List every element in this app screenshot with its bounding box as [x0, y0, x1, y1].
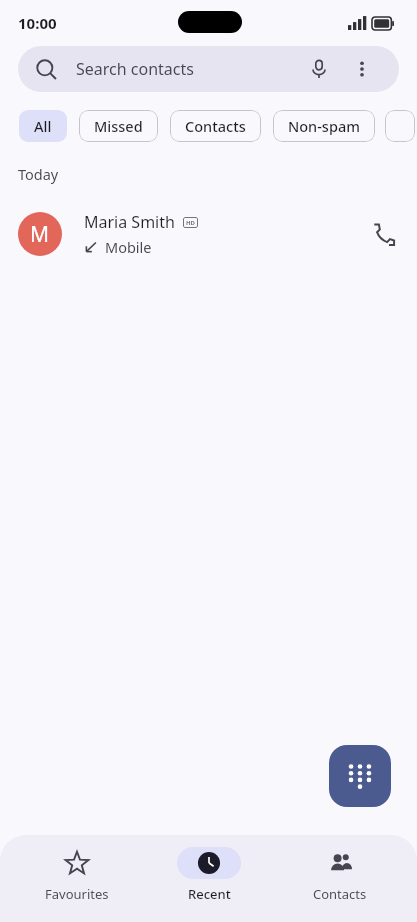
staticText: Non-spam	[288, 116, 360, 136]
button[interactable]: Voice search	[302, 52, 336, 86]
staticText: Mobile	[105, 237, 152, 257]
button[interactable]: M	[0, 202, 417, 266]
staticText: Contacts	[313, 885, 367, 903]
button[interactable]: Contacts	[185, 110, 246, 142]
button[interactable]: Call Maria Smith	[360, 211, 406, 257]
staticText: Search contacts	[76, 58, 194, 80]
staticText: Favourites	[45, 885, 109, 903]
staticText: HD	[186, 219, 195, 227]
button[interactable]: Search contacts	[18, 46, 399, 92]
staticText: Contacts	[185, 116, 246, 136]
staticText: Missed	[94, 116, 143, 136]
button[interactable]: Dialpad	[329, 745, 391, 807]
button[interactable]: Contacts	[285, 847, 395, 903]
staticText: Today	[18, 164, 59, 184]
button[interactable]: More options	[345, 52, 379, 86]
staticText: Recent	[188, 885, 231, 903]
button[interactable]	[385, 110, 415, 142]
button[interactable]: All	[34, 110, 52, 142]
staticText: 10:00	[18, 13, 57, 33]
staticText: Maria Smith	[84, 211, 175, 233]
staticText: All	[34, 116, 52, 136]
staticText: M	[30, 220, 50, 249]
button[interactable]: Favourites	[22, 847, 132, 903]
button[interactable]: Missed	[94, 110, 143, 142]
button[interactable]: Non-spam	[288, 110, 360, 142]
button[interactable]: Recent	[154, 847, 264, 903]
